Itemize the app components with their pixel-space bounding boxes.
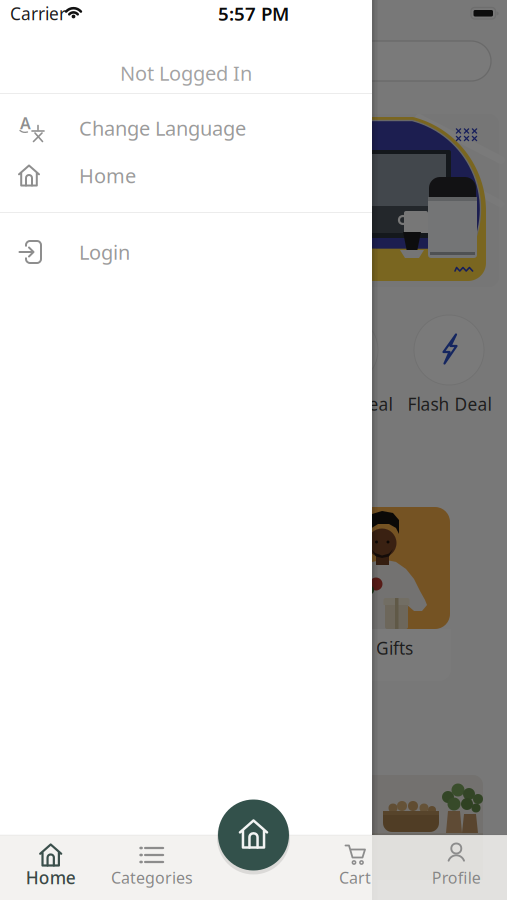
- staticText: Todays Deal: [294, 392, 392, 415]
- staticText: Not Logged In: [120, 60, 252, 86]
- button[interactable]: Home: [218, 799, 289, 870]
- staticText: A: [20, 112, 31, 134]
- button[interactable]: Home: [0, 151, 372, 200]
- button[interactable]: Featured product: [288, 775, 483, 880]
- staticText: Categories: [111, 867, 193, 888]
- button[interactable]: Home: [16, 835, 86, 891]
- button[interactable]: Profile: [421, 835, 491, 891]
- staticText: Gifts: [376, 636, 413, 659]
- button[interactable]: Todays Deal: [308, 315, 378, 385]
- button[interactable]: Change Language: [0, 103, 372, 152]
- staticText: Home: [26, 866, 76, 889]
- button[interactable]: Login: [0, 227, 372, 276]
- button[interactable]: Cart: [320, 835, 390, 891]
- staticText: Flash Deal: [407, 392, 491, 415]
- staticText: 5:57 PM: [218, 1, 289, 26]
- button[interactable]: Categories: [117, 835, 187, 891]
- staticText: Login: [79, 239, 130, 265]
- staticText: Change Language: [79, 115, 246, 141]
- staticText: Carrier: [10, 2, 66, 25]
- staticText: Home: [79, 162, 136, 189]
- button[interactable]: Promotion banner: [9, 114, 499, 287]
- button[interactable]: Gifts category: [356, 507, 451, 681]
- button[interactable]: Search: [16, 41, 491, 81]
- button[interactable]: Flash Deal: [414, 315, 484, 385]
- staticText: Cart: [339, 867, 371, 888]
- staticText: Profile: [432, 867, 481, 888]
